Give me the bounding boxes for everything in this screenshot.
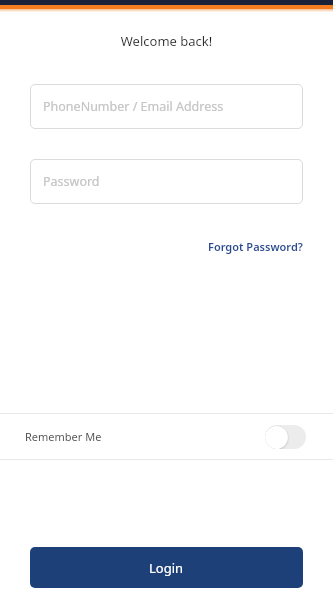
button[interactable]: Forgot Password? — [208, 239, 303, 254]
button[interactable]: PhoneNumber / Email Address — [30, 84, 303, 129]
button[interactable]: Login — [30, 547, 303, 588]
staticText: Welcome back! — [0, 32, 333, 50]
staticText: PhoneNumber / Email Address — [43, 98, 224, 115]
staticText: Password — [43, 173, 100, 190]
staticText: Login — [149, 559, 184, 577]
button[interactable]: Remember Me — [0, 414, 333, 459]
staticText: Remember Me — [25, 429, 102, 444]
button[interactable]: Password — [30, 159, 303, 204]
